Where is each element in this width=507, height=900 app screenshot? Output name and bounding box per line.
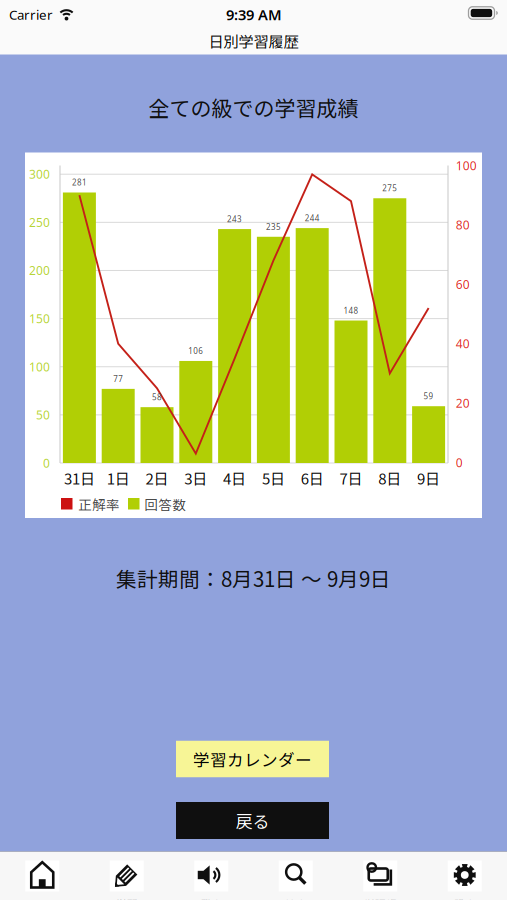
staticText: 学習カレンダー [193,747,312,771]
staticText: 日別学習履歴 [208,30,298,52]
staticText: 4日 [223,467,246,489]
staticText: 77 [113,374,123,384]
staticText: 7日 [339,467,362,489]
staticText: 58 [152,392,162,402]
staticText: 200 [29,262,50,278]
button[interactable]: Sound [169,852,253,900]
button[interactable]: Settings [422,852,507,900]
staticText: 59 [424,391,434,401]
button[interactable]: Home [0,852,84,900]
staticText: 300 [29,166,50,182]
staticText: 9:39 AM [226,5,282,24]
staticText: 80 [456,217,470,233]
staticText: 単語帳 [364,896,397,900]
staticText: 8日 [378,467,401,489]
button[interactable]: Search [253,852,338,900]
staticText: 235 [266,221,281,232]
button[interactable]: Word cards [338,852,422,900]
staticText: 1日 [107,467,130,489]
staticText: 5日 [262,467,285,489]
staticText: 243 [227,214,242,224]
staticText: 275 [382,183,397,194]
staticText: 3日 [184,467,207,489]
staticText: 250 [29,214,50,230]
staticText: 2日 [145,467,168,489]
staticText: 31日 [64,467,95,489]
staticText: 0 [43,455,50,471]
staticText: 設定 [454,896,476,900]
staticText: 60 [456,276,470,292]
staticText: 発音 [200,896,222,900]
staticText: 学習 [116,896,138,900]
staticText: 100 [456,157,477,173]
staticText: 150 [29,311,50,326]
staticText: 集計期間：8月31日 ～ 9月9日 [116,563,391,593]
staticText: 回答数 [144,494,186,514]
staticText: 戻る [235,808,269,833]
staticText: 9日 [417,467,440,489]
staticText: 148 [343,305,358,316]
staticText: 全ての級での学習成績 [148,92,358,122]
button[interactable]: Study [84,852,169,900]
staticText: 20 [456,395,470,411]
staticText: 281 [72,177,87,188]
staticText: 244 [305,213,320,223]
staticText: 40 [456,336,470,352]
staticText: 0 [456,454,463,470]
staticText: 6日 [301,467,324,489]
staticText: 50 [36,407,50,423]
staticText: 100 [29,359,50,375]
button[interactable]: 学習カレンダー [176,741,329,777]
button[interactable]: 戻る [176,802,329,839]
staticText: Carrier [9,6,53,23]
staticText: 106 [188,346,203,356]
staticText: 正解率 [78,494,120,514]
